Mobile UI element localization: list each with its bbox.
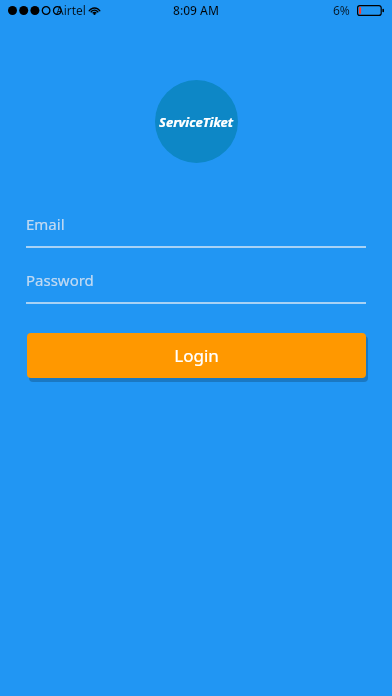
button[interactable]: Password [26, 270, 366, 304]
staticText: Password [26, 270, 94, 290]
button[interactable]: Login [27, 333, 366, 378]
staticText: 6% [333, 2, 350, 18]
button[interactable]: Email [26, 214, 366, 248]
staticText: ServiceTiket [159, 113, 234, 131]
staticText: Email [26, 214, 65, 234]
staticText: 8:09 AM [0, 2, 392, 18]
staticText: Airtel [56, 2, 86, 18]
staticText: Login [174, 344, 219, 367]
